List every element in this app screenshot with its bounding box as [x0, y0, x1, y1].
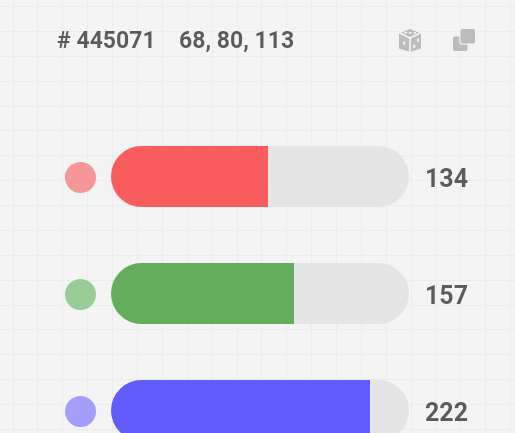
staticText: 68, 80, 113: [179, 27, 295, 54]
staticText: 134: [425, 164, 469, 193]
button[interactable]: [111, 146, 409, 207]
staticText: # 445071: [57, 27, 156, 54]
staticText: 157: [425, 281, 469, 310]
other: Green channel: [65, 279, 96, 310]
button[interactable]: [111, 263, 409, 324]
other: Red channel: [65, 162, 96, 193]
button[interactable]: Shuffle random colour: [388, 18, 432, 62]
other: Blue channel: [65, 396, 96, 427]
button[interactable]: [111, 380, 409, 433]
staticText: 222: [425, 398, 469, 427]
button[interactable]: Copy colour code: [442, 18, 486, 62]
